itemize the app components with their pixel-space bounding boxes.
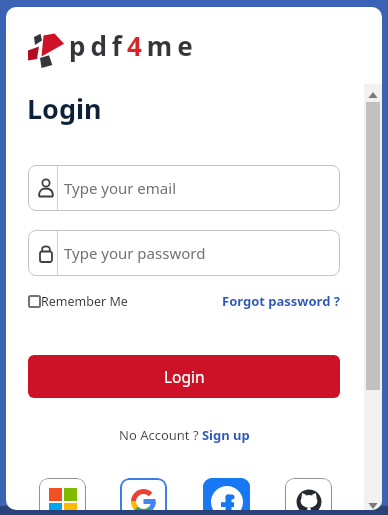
button[interactable]: Remember Me [28,293,128,310]
staticText: Type your email [64,178,177,198]
button[interactable]: Login [28,355,340,398]
staticText: Login [27,90,102,127]
staticText: Login [164,366,205,387]
button[interactable]: Type your email [28,165,340,211]
button[interactable]: Forgot password ? [222,292,340,310]
button[interactable] [203,478,250,510]
staticText: pdf4me [69,28,198,63]
button[interactable] [120,478,167,510]
button[interactable] [39,478,86,510]
staticText: Remember Me [41,293,128,310]
button[interactable] [285,478,332,510]
staticText: Type your password [64,243,206,263]
button[interactable]: No Account ? Sign up [119,426,250,444]
button[interactable]: Type your password [28,230,340,276]
